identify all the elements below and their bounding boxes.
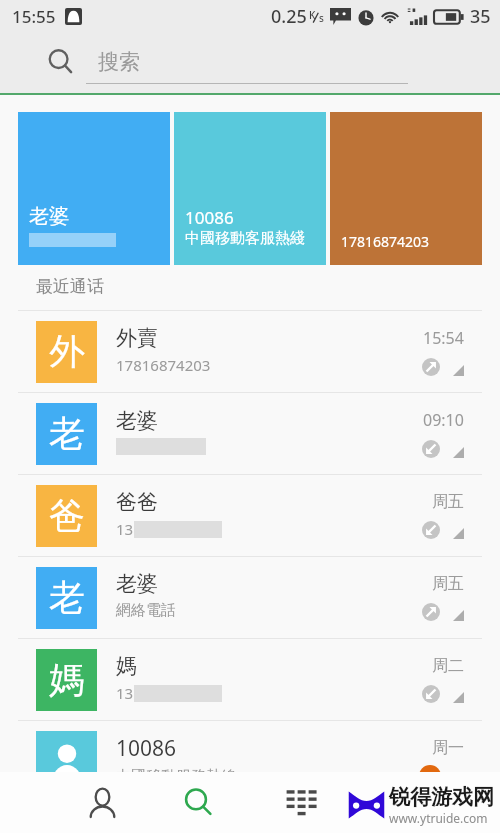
staticText: 外 — [49, 329, 85, 374]
staticText: 15:54 — [423, 327, 464, 349]
staticText: 老婆 — [29, 204, 69, 229]
staticText: 中國移動客服熱綫 — [185, 229, 305, 248]
staticText: 老婆 — [116, 408, 158, 434]
button[interactable]: Search — [168, 772, 229, 833]
staticText: s — [319, 11, 324, 25]
staticText: 13 — [116, 683, 134, 703]
staticText: www.ytruide.com — [389, 810, 488, 826]
staticText: 媽 — [116, 653, 137, 679]
staticText: 锐得游戏网 — [389, 784, 494, 810]
staticText: 0.25 — [271, 4, 307, 29]
staticText: 老 — [49, 575, 85, 620]
staticText: 老 — [49, 411, 85, 456]
button[interactable]: Contacts — [72, 772, 133, 833]
staticText: 網絡電話 — [116, 601, 176, 620]
staticText: 10086 — [116, 734, 177, 763]
button[interactable]: 外 — [0, 311, 500, 392]
button[interactable]: 爸 — [0, 475, 500, 556]
staticText: 媽 — [49, 657, 85, 702]
staticText: 周五 — [432, 574, 464, 594]
button[interactable]: 老 — [0, 393, 500, 474]
staticText: 35 — [470, 4, 491, 29]
staticText: 17816874203 — [341, 232, 430, 251]
staticText: 17816874203 — [116, 355, 211, 375]
button[interactable]: Dial — [419, 765, 441, 787]
button[interactable]: 10086 — [174, 112, 326, 265]
staticText: 09:10 — [423, 409, 464, 431]
staticText: 周一 — [432, 738, 464, 758]
staticText: 搜索 — [98, 49, 140, 75]
staticText: 最近通话 — [36, 276, 104, 297]
staticText: 外賣 — [116, 325, 158, 351]
button[interactable]: 老 — [0, 557, 500, 638]
staticText: 15:55 — [12, 5, 56, 28]
staticText: 10086 — [185, 206, 234, 229]
staticText: 13 — [116, 519, 134, 539]
button[interactable]: 17816874203 — [330, 112, 482, 265]
button[interactable]: 老婆 — [18, 112, 170, 265]
staticText: 周二 — [432, 656, 464, 676]
button[interactable]: 媽 — [0, 639, 500, 720]
staticText: 老婆 — [116, 571, 158, 597]
staticText: 周五 — [432, 492, 464, 512]
staticText: 中國移動服務熱線 — [116, 767, 236, 786]
staticText: K — [309, 8, 316, 22]
button[interactable]: Dialpad — [270, 772, 331, 833]
button[interactable]: 10086 — [0, 721, 500, 802]
staticText: 爸爸 — [116, 489, 158, 515]
staticText: 爸 — [49, 493, 85, 538]
